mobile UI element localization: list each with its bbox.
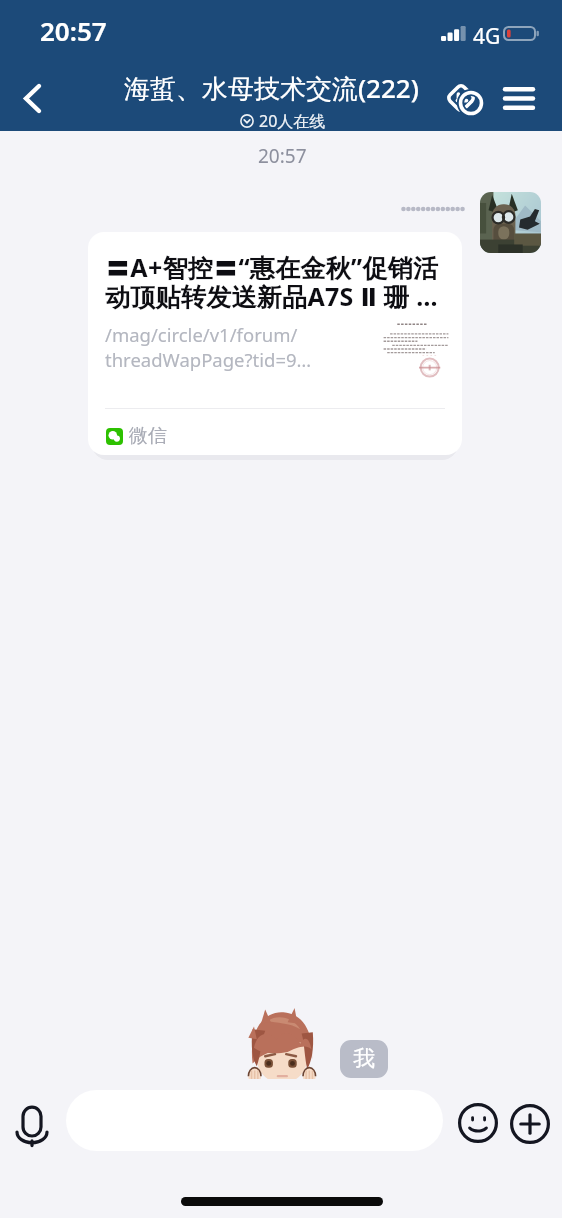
staticText: 4G xyxy=(473,22,501,51)
button[interactable]: Emoji xyxy=(450,1095,506,1151)
staticText: 海蜇、水母技术交流(222) xyxy=(124,70,419,106)
staticText: 20人在线 xyxy=(259,110,326,132)
button[interactable] xyxy=(480,192,541,253)
staticText: 微信 xyxy=(129,424,167,448)
staticText: 我 xyxy=(353,1045,375,1073)
button[interactable]: 〓A+智控〓“惠在金秋”促销活动顶贴转发送新品A7S Ⅱ 珊 … xyxy=(88,232,462,455)
button[interactable]: Group QR code xyxy=(433,70,489,126)
button[interactable]: More options xyxy=(501,1095,558,1152)
staticText: 〓A+智控〓“惠在金秋”促销活动顶贴转发送新品A7S Ⅱ 珊 … xyxy=(105,250,446,314)
button[interactable]: Voice message xyxy=(3,1097,61,1155)
staticText: /mag/circle/v1/forum/threadWapPage?tid=9… xyxy=(105,322,315,372)
button[interactable]: 我 xyxy=(340,1040,388,1078)
button[interactable]: Back xyxy=(0,66,64,130)
staticText: 20:57 xyxy=(40,13,107,48)
staticText: 20:57 xyxy=(258,143,307,169)
button[interactable]: Menu xyxy=(491,70,547,126)
